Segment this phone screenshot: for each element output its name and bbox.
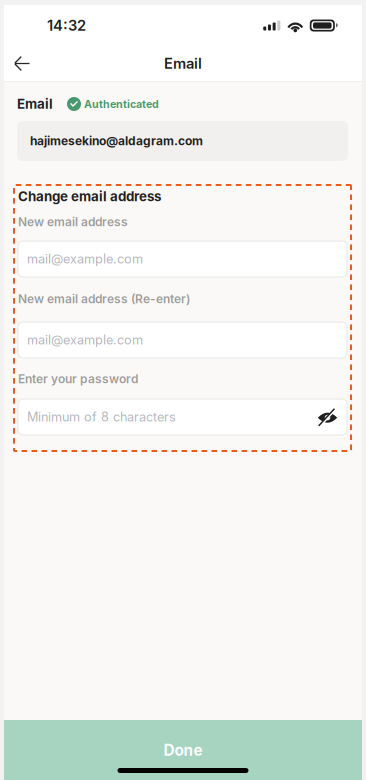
staticText: mail@example.com [27,251,143,267]
staticText: Enter your password [18,372,138,386]
button[interactable]: Show password [317,408,338,425]
button[interactable]: Done [4,720,362,780]
staticText: 14:32 [47,17,86,34]
staticText: New email address [18,215,128,229]
staticText: New email address (Re-enter) [18,292,190,306]
staticText: Email [17,96,53,112]
staticText: Authenticated [84,97,159,110]
staticText: Change email address [18,188,161,204]
staticText: mail@example.com [27,332,143,348]
staticText: Email [164,55,202,72]
button[interactable]: Back [7,46,37,81]
staticText: Minimum of 8 characters [27,409,176,425]
staticText: hajimesekino@aldagram.com [30,134,203,148]
staticText: Done [163,741,202,760]
